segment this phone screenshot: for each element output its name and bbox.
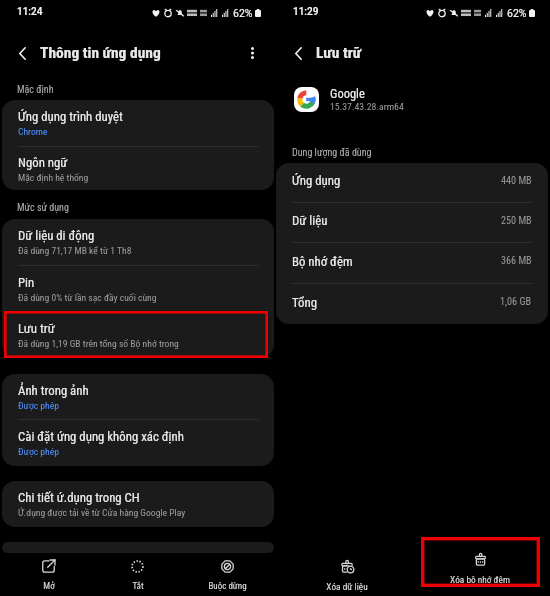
button[interactable]: Mở bbox=[3, 554, 93, 596]
button[interactable]: Ứng dụng trình duyệt bbox=[2, 100, 274, 146]
button[interactable]: Ngôn ngữ bbox=[2, 147, 274, 190]
button[interactable]: Xóa dữ liệu bbox=[302, 554, 392, 596]
staticText: Google bbox=[330, 86, 365, 101]
staticText: Chrome bbox=[18, 126, 48, 137]
staticText: Ứng dụng trình duyệt bbox=[18, 109, 123, 124]
staticText: Cài đặt ứng dụng không xác định bbox=[18, 429, 184, 444]
staticText: Đã dùng 1,19 GB trên tổng số Bộ nhớ tron… bbox=[18, 338, 179, 349]
button[interactable]: Bộ nhớ đệm bbox=[276, 243, 548, 283]
staticText: Mặc định bbox=[17, 84, 54, 96]
button[interactable]: Ảnh trong ảnh bbox=[2, 374, 274, 419]
staticText: Xóa bộ nhớ đệm bbox=[450, 574, 510, 585]
staticText: 62% bbox=[233, 7, 253, 19]
button[interactable]: Chi tiết ứ.dụng trong CH bbox=[2, 481, 274, 527]
staticText: Ứng dụng bbox=[292, 173, 341, 188]
button[interactable]: Tắt bbox=[92, 554, 182, 596]
staticText: Ảnh trong ảnh bbox=[18, 383, 89, 398]
staticText: 15.37.43.28.arm64 bbox=[330, 101, 404, 112]
button[interactable]: Back bbox=[11, 42, 33, 64]
staticText: Ứ.dụng được tải về từ Cửa hàng Google Pl… bbox=[18, 507, 186, 518]
staticText: Dữ liệu di động bbox=[18, 228, 95, 243]
staticText: Tắt bbox=[132, 581, 144, 592]
staticText: Lưu trữ bbox=[18, 321, 55, 336]
staticText: Được phép bbox=[18, 446, 59, 457]
staticText: Được phép bbox=[18, 400, 59, 411]
staticText: Buộc dừng bbox=[208, 581, 247, 592]
button[interactable]: Pin bbox=[2, 266, 274, 311]
button[interactable]: More options bbox=[241, 42, 263, 64]
staticText: Lưu trữ bbox=[316, 44, 362, 62]
staticText: Mở bbox=[43, 581, 55, 592]
button[interactable]: Dữ liệu di động bbox=[2, 219, 274, 265]
staticText: Tổng bbox=[292, 295, 317, 310]
button[interactable]: Ứng dụng bbox=[276, 163, 548, 202]
staticText: Bộ nhớ đệm bbox=[292, 254, 353, 269]
staticText: Mức sử dụng bbox=[17, 202, 69, 214]
staticText: Thông tin ứng dụng bbox=[40, 44, 161, 62]
staticText: Xóa dữ liệu bbox=[326, 581, 368, 592]
staticText: Ngôn ngữ bbox=[18, 155, 68, 170]
staticText: 366 MB bbox=[501, 255, 532, 267]
button[interactable]: Buộc dừng bbox=[182, 554, 272, 596]
staticText: Đã dùng 0% từ lần sạc đầy cuối cùng bbox=[18, 292, 157, 303]
button[interactable]: Lưu trữ bbox=[2, 312, 274, 357]
staticText: Dữ liệu bbox=[292, 213, 328, 228]
staticText: 11:24 bbox=[17, 6, 43, 18]
staticText: Dung lượng đã dùng bbox=[292, 147, 372, 159]
button[interactable]: Dữ liệu bbox=[276, 203, 548, 242]
button[interactable]: Xóa bộ nhớ đệm bbox=[435, 547, 525, 589]
button[interactable]: Tổng bbox=[276, 284, 548, 324]
staticText: Đã dùng 71,17 MB kể từ 1 Th8 bbox=[18, 245, 132, 256]
staticText: 11:29 bbox=[293, 6, 319, 18]
button[interactable]: Back bbox=[287, 42, 309, 64]
staticText: 440 MB bbox=[501, 175, 532, 187]
staticText: Mặc định hệ thống bbox=[18, 172, 89, 183]
staticText: 250 MB bbox=[501, 215, 532, 227]
staticText: 1,06 GB bbox=[500, 296, 532, 308]
button[interactable]: Cài đặt ứng dụng không xác định bbox=[2, 420, 274, 466]
staticText: Pin bbox=[18, 275, 35, 290]
staticText: 62% bbox=[507, 7, 527, 19]
staticText: Chi tiết ứ.dụng trong CH bbox=[18, 490, 140, 505]
